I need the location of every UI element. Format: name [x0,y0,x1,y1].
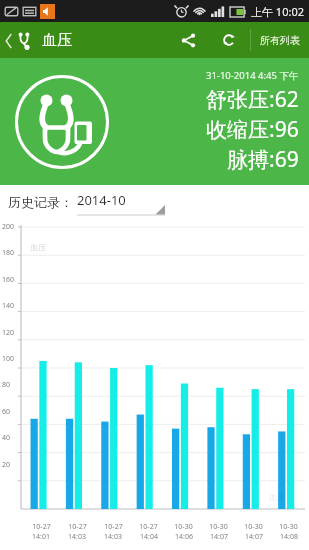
staticText: 10-30 [244,522,263,532]
staticText: 14:08 [280,532,298,542]
staticText: 舒张压:62 [206,85,299,114]
staticText: 200 [2,222,15,232]
staticText: 140 [2,301,15,311]
staticText: 80 [2,380,11,390]
staticText: 14:01 [32,532,50,542]
staticText: 100 [2,354,15,364]
staticText: 10-30 [209,522,228,532]
staticText: 血压 [42,31,72,50]
staticText: 10-27 [68,522,87,532]
staticText: 14:07 [245,532,263,542]
staticText: 10-27 [139,522,158,532]
staticText: 180 [2,248,15,258]
button[interactable]: Share [168,22,208,58]
staticText: 脉搏:69 [227,145,299,174]
staticText: 收缩压:96 [206,115,299,144]
staticText: 血压 [30,242,46,252]
button[interactable]: 2014-10 [77,188,165,216]
staticText: 10-30 [174,522,193,532]
staticText: 40 [2,433,11,443]
button[interactable]: Back [0,31,78,50]
staticText: 血压 [269,492,285,502]
staticText: 14:06 [175,532,193,542]
button[interactable]: 所有列表 [251,22,309,58]
button[interactable]: Refresh [208,22,250,58]
staticText: 14:04 [140,532,158,542]
staticText: 10-27 [104,522,123,532]
staticText: 历史记录： [8,194,73,210]
staticText: 14:03 [68,532,86,542]
staticText: 20 [2,460,11,470]
staticText: 31-10-2014 4:45 下午 [206,69,299,82]
staticText: 14:07 [210,532,228,542]
staticText: 上午 10:02 [251,4,304,19]
staticText: 160 [2,275,15,285]
staticText: 2014-10 [77,191,126,209]
staticText: 10-30 [279,522,298,532]
staticText: 所有列表 [260,34,300,47]
staticText: 120 [2,328,15,338]
staticText: 14:03 [104,532,122,542]
staticText: 60 [2,407,11,417]
staticText: 10-27 [32,522,51,532]
